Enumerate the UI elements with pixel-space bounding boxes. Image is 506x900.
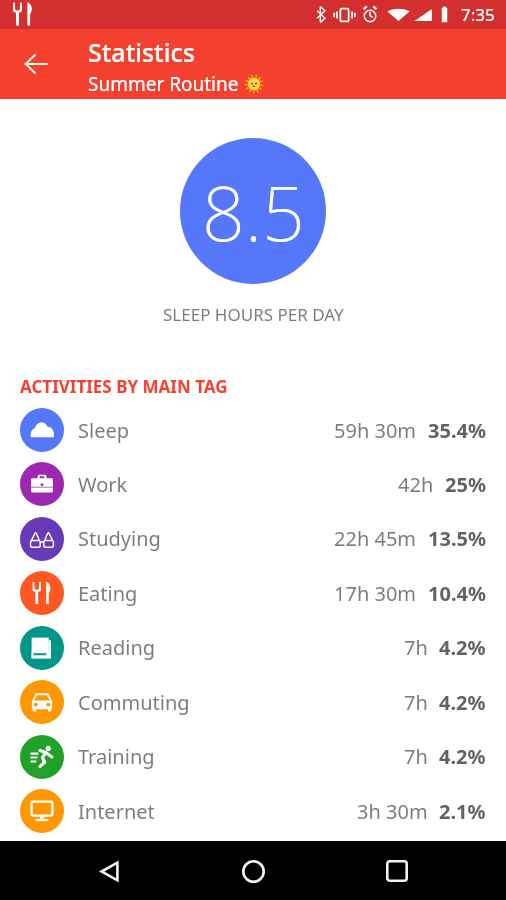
- button[interactable]: Commuting: [0, 675, 506, 729]
- staticText: Statistics: [88, 35, 195, 69]
- staticText: 13.5%: [428, 525, 486, 552]
- staticText: 35.4%: [428, 417, 486, 444]
- button[interactable]: Work: [0, 457, 506, 511]
- staticText: 8.5: [202, 161, 305, 263]
- staticText: Eating: [78, 580, 138, 607]
- staticText: Sleep: [78, 417, 129, 444]
- staticText: 7h: [404, 634, 428, 661]
- staticText: Internet: [78, 798, 155, 825]
- button[interactable]: Back: [12, 40, 60, 88]
- staticText: Commuting: [78, 689, 190, 716]
- staticText: 59h 30m: [334, 417, 417, 444]
- staticText: 2.1%: [439, 798, 486, 825]
- staticText: SLEEP HOURS PER DAY: [163, 303, 344, 326]
- button[interactable]: Reading: [0, 620, 506, 675]
- staticText: Studying: [78, 525, 161, 552]
- button[interactable]: Recents: [368, 847, 416, 895]
- button[interactable]: Eating: [0, 566, 506, 620]
- staticText: 17h 30m: [334, 580, 417, 607]
- staticText: 25%: [445, 471, 486, 498]
- staticText: ACTIVITIES BY MAIN TAG: [20, 375, 228, 398]
- staticText: Summer Routine: [88, 71, 239, 97]
- staticText: 4.2%: [439, 743, 486, 770]
- staticText: 7h: [404, 689, 428, 716]
- staticText: 10.4%: [428, 580, 486, 607]
- staticText: 4.2%: [439, 689, 486, 716]
- staticText: 22h 45m: [334, 525, 417, 552]
- staticText: Training: [78, 743, 155, 770]
- button[interactable]: Internet: [0, 784, 506, 838]
- button[interactable]: Back: [91, 847, 139, 895]
- button[interactable]: Studying: [0, 511, 506, 566]
- staticText: 42h: [398, 471, 434, 498]
- staticText: 7h: [404, 743, 428, 770]
- staticText: 4.2%: [439, 634, 486, 661]
- staticText: Reading: [78, 634, 156, 661]
- staticText: 7:35: [461, 3, 495, 26]
- button[interactable]: Sleep: [0, 403, 506, 457]
- staticText: Work: [78, 471, 128, 498]
- button[interactable]: Home: [229, 847, 277, 895]
- button[interactable]: Training: [0, 729, 506, 784]
- staticText: 3h 30m: [357, 798, 428, 825]
